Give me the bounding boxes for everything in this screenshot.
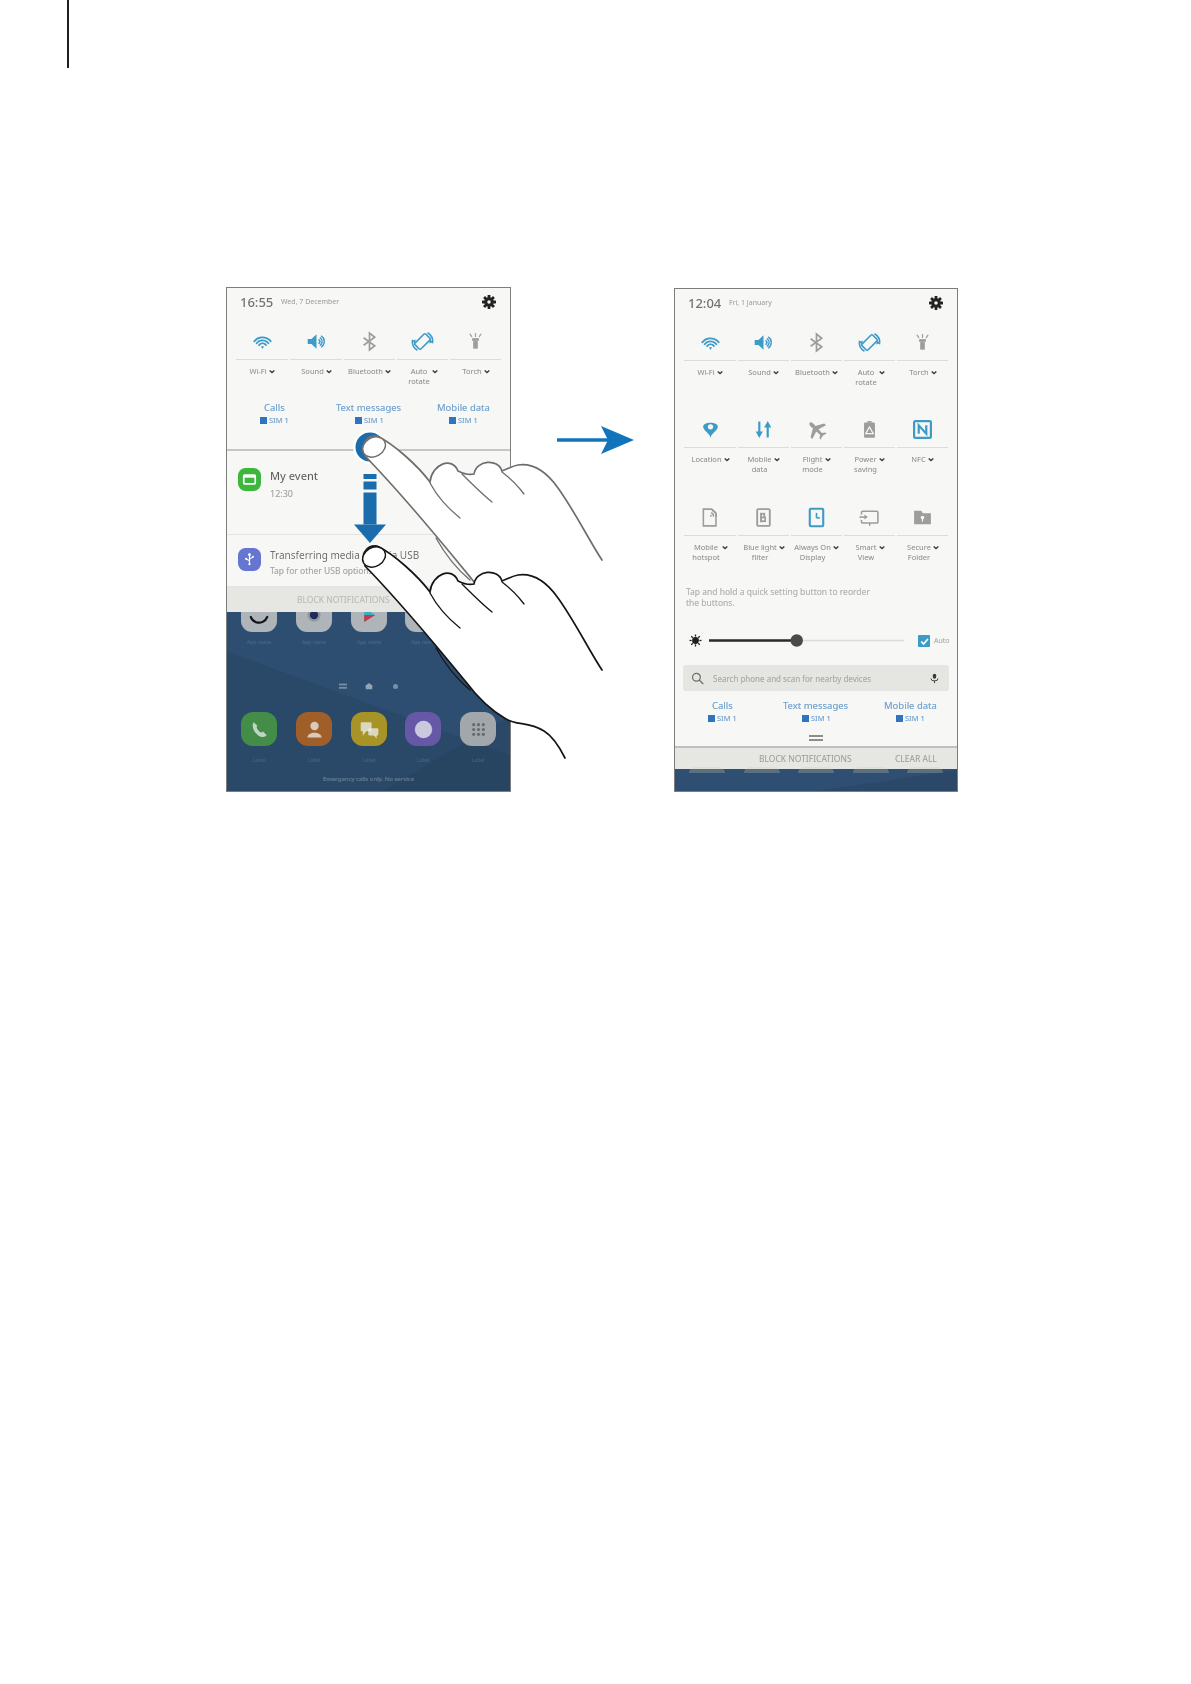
staticText: Wi-Fi (249, 366, 267, 376)
staticText: Power saving (854, 454, 877, 474)
staticText: Fri, 1 January (729, 298, 772, 308)
staticText: Smart View (855, 542, 877, 562)
button[interactable]: Flight mode (790, 411, 843, 447)
button[interactable]: Location (683, 454, 737, 476)
button[interactable]: Mobile hotspot (683, 542, 737, 564)
button[interactable]: Auto rotate (843, 367, 896, 389)
button[interactable]: Collapse panel (675, 732, 957, 744)
button[interactable]: Sound (289, 366, 343, 388)
staticText: Label (417, 757, 430, 764)
staticText: Search phone and scan for nearby devices (713, 673, 871, 684)
button[interactable]: Auto rotate (396, 323, 449, 359)
button[interactable]: Settings (927, 294, 945, 312)
button[interactable]: Power saving (843, 411, 896, 447)
button[interactable]: App (405, 612, 441, 632)
button[interactable]: Calls (227, 401, 322, 427)
button[interactable]: Bluetooth (790, 367, 843, 389)
button[interactable]: Location (683, 411, 737, 447)
staticText: Transferring media files via USB (270, 548, 420, 562)
button[interactable]: Wi-Fi (235, 323, 289, 359)
button[interactable]: Text messages (769, 699, 863, 725)
button[interactable]: Search phone and scan for nearby devices (683, 665, 949, 691)
button[interactable]: Torch (449, 366, 502, 388)
button[interactable]: Brightness (709, 634, 904, 647)
staticText: App name (411, 639, 436, 646)
button[interactable]: NFC (896, 411, 949, 447)
staticText: Torch (909, 367, 929, 377)
button[interactable]: BLOCK NOTIFICATIONS (740, 748, 871, 769)
button[interactable]: Calls (675, 699, 769, 725)
button[interactable]: Wi-Fi (235, 366, 289, 388)
staticText: Auto (934, 636, 950, 646)
button[interactable]: Mobile data (737, 454, 790, 476)
staticText: App name (357, 639, 382, 646)
button[interactable]: App (296, 712, 332, 746)
button[interactable]: Flight mode (790, 454, 843, 476)
staticText: Text messages (336, 401, 402, 414)
button[interactable]: App (296, 612, 332, 632)
button[interactable]: Auto rotate (396, 366, 449, 388)
button[interactable]: Auto rotate (843, 324, 896, 360)
staticText: SIM 1 (717, 713, 737, 723)
button[interactable]: App (351, 612, 387, 632)
staticText: Location (691, 454, 722, 464)
staticText: Wed, 7 December (281, 297, 340, 307)
button[interactable]: Sound (289, 323, 343, 359)
button[interactable]: Mobile hotspot (683, 499, 737, 535)
button[interactable]: Blue light filter (737, 542, 790, 564)
button[interactable]: Sound (737, 367, 790, 389)
staticText: Calls (712, 699, 733, 712)
button[interactable]: NFC (896, 454, 949, 476)
button[interactable]: Wi-Fi (683, 324, 737, 360)
staticText: SIM 1 (269, 415, 289, 425)
staticText: CLEAR ALL (895, 753, 937, 765)
button[interactable]: App (405, 712, 441, 746)
button[interactable]: Mobile data (737, 411, 790, 447)
button[interactable]: Smart View (843, 542, 896, 564)
button[interactable]: Torch (449, 323, 502, 359)
button[interactable]: Bluetooth (343, 366, 396, 388)
button[interactable]: Always On Display (790, 499, 843, 535)
button[interactable]: My event (227, 451, 510, 534)
staticText: SIM 1 (905, 713, 925, 723)
staticText: Mobile hotspot (692, 542, 720, 562)
staticText: BLOCK NOTIFICATIONS (759, 753, 852, 765)
staticText: Tap for other USB options. (270, 565, 376, 577)
button[interactable]: Bluetooth (790, 324, 843, 360)
button[interactable]: Sound (737, 324, 790, 360)
button[interactable]: Blue light filter (737, 499, 790, 535)
button[interactable]: Wi-Fi (683, 367, 737, 389)
button[interactable]: Torch (896, 367, 949, 389)
button[interactable]: Secure Folder (896, 542, 949, 564)
button[interactable]: Transferring media files via USB (227, 535, 510, 586)
button[interactable]: App (241, 712, 277, 746)
button[interactable]: Settings (480, 293, 498, 311)
button[interactable]: App (460, 712, 496, 746)
staticText: Bluetooth (795, 367, 830, 377)
button[interactable]: Auto brightness (918, 635, 930, 647)
staticText: 12:30 (270, 487, 294, 499)
button[interactable]: Secure Folder (896, 499, 949, 535)
button[interactable]: Always On Display (790, 542, 843, 564)
button[interactable]: Text messages (322, 401, 416, 427)
button[interactable]: Bluetooth (343, 323, 396, 359)
button[interactable]: Mobile data (863, 699, 957, 725)
staticText: NFC (911, 454, 926, 464)
staticText: Sound (301, 366, 324, 376)
staticText: Sound (748, 367, 771, 377)
button[interactable]: CLEAR ALL (875, 748, 957, 769)
staticText: Tap and hold a quick setting button to r… (686, 586, 884, 608)
button[interactable]: BLOCK NOTIFICATIONS (278, 587, 409, 612)
staticText: SIM 1 (364, 415, 384, 425)
button[interactable]: Power saving (843, 454, 896, 476)
staticText: Mobile data (884, 699, 937, 712)
staticText: App name (247, 639, 272, 646)
button[interactable]: App (241, 612, 277, 632)
button[interactable]: App (351, 712, 387, 746)
staticText: Label (253, 757, 266, 764)
button[interactable]: Smart View (843, 499, 896, 535)
button[interactable]: Mobile data (416, 401, 510, 427)
button[interactable]: Torch (896, 324, 949, 360)
button[interactable]: App (460, 612, 496, 632)
